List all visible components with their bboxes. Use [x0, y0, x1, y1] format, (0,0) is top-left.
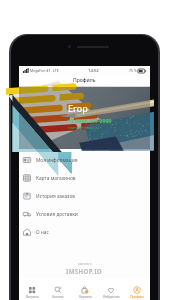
staticText: 14:52 — [88, 68, 99, 74]
staticText: История заказов — [36, 193, 75, 200]
staticText: LTE — [53, 68, 59, 73]
staticText: Егор — [68, 102, 88, 114]
staticText: Витрина — [26, 295, 39, 299]
staticText: Условия доставки — [36, 211, 78, 218]
staticText: Моя информация — [36, 157, 78, 164]
staticText: Корзина — [79, 295, 92, 299]
staticText: name@email.ru — [68, 125, 100, 131]
button[interactable]: Избранное — [98, 278, 124, 299]
staticText: Профиль — [130, 295, 144, 299]
staticText: сделано в — [78, 262, 92, 266]
button[interactable]: Моя информация — [19, 151, 150, 169]
button[interactable]: История заказов — [19, 187, 150, 205]
button[interactable]: Профиль — [124, 278, 150, 299]
button[interactable]: Каталог — [45, 278, 71, 299]
button[interactable]: Условия доставки — [19, 205, 150, 223]
button[interactable]: Корзина — [72, 278, 98, 299]
staticText: Избранное — [103, 295, 120, 299]
staticText: +7 (999) 999-9999 — [68, 117, 112, 124]
staticText: MegaFon #1 — [30, 68, 51, 73]
staticText: IMSHOP.IO — [66, 267, 103, 275]
button[interactable]: О нас — [19, 223, 150, 241]
staticText: Каталог — [52, 295, 64, 299]
staticText: О нас — [36, 229, 49, 236]
staticText: Профиль — [73, 77, 96, 84]
staticText: Карта магазинов — [36, 175, 76, 182]
button[interactable]: Карта магазинов — [19, 169, 150, 187]
staticText: 75 % — [129, 68, 137, 73]
button[interactable]: Витрина — [19, 278, 45, 299]
